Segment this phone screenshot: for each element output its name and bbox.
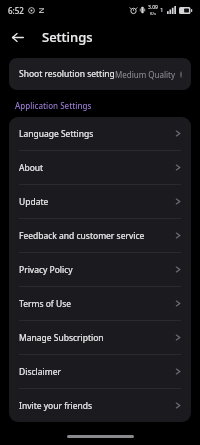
- button[interactable]: Feedback and customer service: [9, 219, 191, 252]
- staticText: Medium Quality: [115, 69, 176, 80]
- staticText: Shoot resolution setting: [19, 68, 115, 80]
- button[interactable]: Update: [9, 185, 191, 218]
- staticText: Manage Subscription: [19, 332, 104, 344]
- staticText: Settings: [42, 28, 93, 46]
- staticText: Privacy Policy: [19, 264, 73, 276]
- staticText: About: [19, 162, 44, 174]
- button[interactable]: Invite your friends: [9, 389, 191, 422]
- button[interactable]: Disclaimer: [9, 355, 191, 388]
- staticText: Invite your friends: [19, 400, 93, 412]
- staticText: Language Settings: [19, 128, 94, 140]
- staticText: Update: [19, 196, 49, 208]
- staticText: 1: [160, 6, 164, 14]
- staticText: Terms of Use: [19, 298, 72, 310]
- staticText: Application Settings: [15, 100, 92, 111]
- staticText: Feedback and customer service: [19, 230, 145, 242]
- button[interactable]: Shoot resolution setting: [9, 58, 191, 90]
- button[interactable]: About: [9, 151, 191, 184]
- button[interactable]: Language Settings: [9, 117, 191, 150]
- staticText: 6:52: [8, 5, 24, 16]
- button[interactable]: Privacy Policy: [9, 253, 191, 286]
- staticText: K/s: [150, 11, 156, 16]
- button[interactable]: Terms of Use: [9, 287, 191, 320]
- staticText: Disclaimer: [19, 366, 61, 378]
- button[interactable]: Manage Subscription: [9, 321, 191, 354]
- staticText: 3.09: [148, 4, 158, 11]
- button[interactable]: Back: [6, 26, 28, 48]
